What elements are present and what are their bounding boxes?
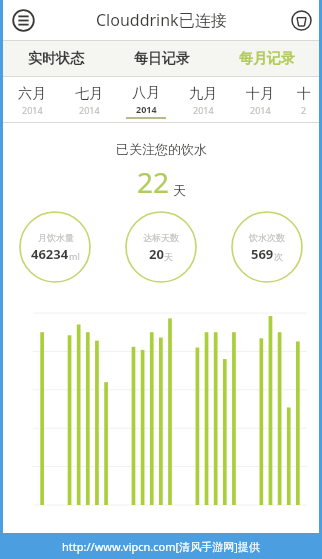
button[interactable]: 八月 (117, 77, 174, 122)
button[interactable]: 每月记录 (214, 41, 319, 76)
staticText: 十月 (246, 85, 274, 103)
staticText: 46234 (31, 245, 69, 263)
button[interactable]: 实时状态 (3, 41, 109, 76)
staticText: 次 (274, 251, 283, 262)
staticText: 2014 (193, 104, 214, 116)
button[interactable]: Device status (291, 10, 312, 31)
staticText: 每月记录 (239, 50, 295, 68)
staticText: 天 (164, 251, 173, 262)
staticText: 月饮水量 (38, 232, 74, 243)
staticText: 八月 (132, 84, 160, 102)
staticText: http://www.vipcn.com[清风手游网]提供 (62, 539, 260, 554)
button[interactable]: 达标天数 (125, 211, 197, 283)
button[interactable]: 饮水次数 (231, 211, 303, 283)
staticText: 实时状态 (28, 50, 84, 68)
staticText: 已关注您的饮水 (116, 141, 207, 157)
staticText: 十 (297, 85, 311, 103)
staticText: 六月 (18, 85, 46, 103)
staticText: 20 (149, 245, 164, 263)
staticText: 2014 (22, 104, 43, 116)
staticText: 九月 (189, 85, 217, 103)
staticText: ml (69, 250, 80, 262)
button[interactable]: 六月 (3, 77, 60, 122)
staticText: 2014 (136, 103, 157, 115)
staticText: 569 (251, 245, 274, 263)
staticText: Clouddrink已连接 (96, 9, 227, 31)
staticText: 七月 (75, 85, 103, 103)
button[interactable]: 十月 (231, 77, 288, 122)
staticText: 达标天数 (143, 232, 179, 243)
staticText: 2014 (79, 104, 100, 116)
staticText: 天 (173, 182, 186, 198)
button[interactable]: 十 (288, 77, 319, 122)
button[interactable]: 九月 (174, 77, 231, 122)
button[interactable]: Menu (12, 9, 35, 32)
staticText: 22 (137, 163, 170, 201)
button[interactable]: 七月 (60, 77, 117, 122)
staticText: 2 (301, 104, 307, 116)
button[interactable]: 每日记录 (109, 41, 214, 76)
staticText: 每日记录 (134, 50, 190, 68)
button[interactable]: 月饮水量 (19, 211, 91, 283)
staticText: 2014 (250, 104, 271, 116)
staticText: 饮水次数 (249, 232, 285, 243)
